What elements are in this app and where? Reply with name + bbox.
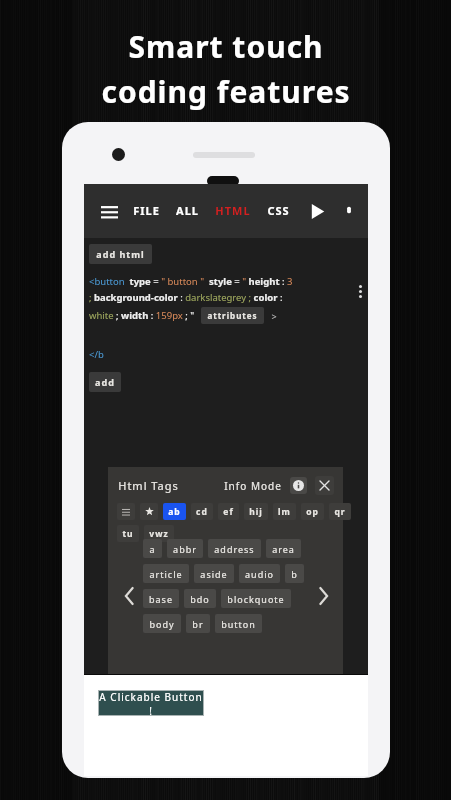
button[interactable]: HTML	[213, 201, 253, 220]
button[interactable]: Close	[315, 476, 334, 495]
button[interactable]: area	[266, 539, 301, 558]
button[interactable]: tu	[117, 525, 139, 542]
button[interactable]: cd	[191, 503, 213, 520]
button[interactable]: vwz	[144, 525, 174, 542]
button[interactable]: qr	[329, 503, 351, 520]
staticText: >	[271, 310, 278, 322]
button[interactable]: audio	[239, 564, 280, 583]
staticText: area	[272, 543, 295, 555]
staticText: br	[192, 618, 204, 630]
button[interactable]: aside	[194, 564, 234, 583]
staticText: article	[149, 568, 183, 580]
staticText: qr	[334, 506, 346, 518]
button[interactable]: ALL	[174, 201, 201, 220]
staticText: Info Mode	[224, 479, 282, 493]
button[interactable]: ef	[218, 503, 239, 520]
button[interactable]: add	[95, 376, 115, 388]
staticText: tu	[122, 528, 134, 540]
button[interactable]: FILE	[131, 201, 162, 220]
button[interactable]: Favorites	[140, 503, 158, 520]
staticText: attributes	[207, 310, 258, 321]
button[interactable]: hij	[244, 503, 268, 520]
button[interactable]: CSS	[265, 201, 292, 220]
button[interactable]: br	[186, 614, 210, 633]
button[interactable]: All tags	[117, 503, 135, 520]
staticText: lm	[278, 506, 291, 518]
button[interactable]: article	[143, 564, 189, 583]
staticText: aside	[200, 568, 228, 580]
staticText: Html Tags	[118, 478, 179, 493]
button[interactable]: Info Mode	[222, 479, 284, 493]
button[interactable]: Previous page	[118, 585, 140, 607]
button[interactable]: A Clickable Button !	[98, 690, 204, 716]
button[interactable]: add html	[96, 248, 145, 260]
staticText: white ; width : 159px ; "	[89, 309, 195, 322]
staticText: ef	[223, 506, 234, 518]
button[interactable]: blockquote	[221, 589, 291, 608]
staticText: </b	[89, 348, 104, 361]
button[interactable]: a	[143, 539, 162, 558]
staticText: hij	[249, 506, 263, 518]
staticText: FILE	[133, 203, 160, 218]
button[interactable]: Info	[290, 477, 307, 494]
button[interactable]: lm	[273, 503, 296, 520]
staticText: address	[214, 543, 255, 555]
staticText: vwz	[149, 528, 169, 540]
staticText: add html	[96, 248, 145, 260]
button[interactable]: attributes	[207, 310, 258, 321]
staticText: a	[149, 543, 156, 555]
staticText: blockquote	[227, 593, 285, 605]
button[interactable]: Next page	[312, 585, 334, 607]
staticText: op	[306, 506, 319, 518]
button[interactable]: address	[208, 539, 261, 558]
button[interactable]: bdo	[184, 589, 216, 608]
staticText: bdo	[190, 593, 210, 605]
staticText: abbr	[173, 543, 197, 555]
staticText: ab	[168, 506, 181, 518]
staticText: HTML	[215, 203, 251, 218]
button[interactable]: ab	[163, 503, 186, 520]
staticText: base	[149, 593, 173, 605]
staticText: CSS	[267, 203, 290, 218]
staticText: b	[291, 568, 298, 580]
button[interactable]: button	[215, 614, 262, 633]
button[interactable]: More options	[336, 197, 362, 223]
staticText: audio	[245, 568, 274, 580]
staticText: body	[149, 618, 175, 630]
button[interactable]: op	[301, 503, 324, 520]
staticText: Smart touch	[128, 26, 324, 67]
staticText: coding features	[101, 71, 351, 112]
staticText: ; background-color : darkslategrey ; col…	[89, 291, 283, 304]
button[interactable]: body	[143, 614, 181, 633]
staticText: add	[95, 376, 115, 388]
button[interactable]: Run	[303, 197, 331, 225]
button[interactable]: base	[143, 589, 179, 608]
staticText: cd	[196, 506, 208, 518]
staticText: button	[221, 618, 256, 630]
button[interactable]: Line options	[350, 281, 370, 301]
button[interactable]: Menu	[94, 196, 124, 226]
staticText: ALL	[176, 203, 199, 218]
button[interactable]: b	[285, 564, 304, 583]
staticText: A Clickable Button !	[98, 690, 204, 716]
button[interactable]: abbr	[167, 539, 203, 558]
staticText: <button type = " button " style = " heig…	[89, 275, 293, 288]
